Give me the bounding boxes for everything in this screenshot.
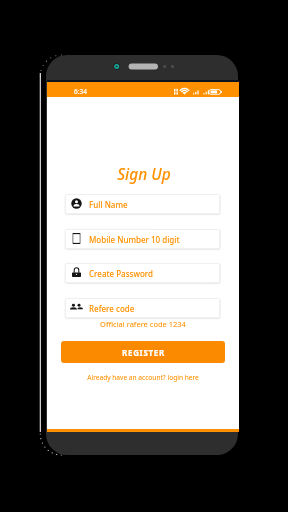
- staticText: Mobile Number 10 digit: [89, 234, 180, 245]
- button[interactable]: Mobile Number 10 digit: [65, 229, 220, 249]
- staticText: Create Password: [89, 268, 153, 279]
- button[interactable]: REGISTER: [61, 341, 225, 363]
- button[interactable]: Full Name: [65, 194, 220, 214]
- staticText: Sign Up: [48, 164, 240, 185]
- staticText: Official rafere code 1234: [47, 319, 239, 329]
- staticText: 6:34: [74, 87, 87, 96]
- button[interactable]: Already have an account? login here: [47, 373, 239, 382]
- button[interactable]: Create Password: [65, 263, 220, 283]
- staticText: Full Name: [89, 199, 128, 210]
- staticText: REGISTER: [122, 347, 165, 358]
- staticText: Already have an account? login here: [87, 373, 199, 382]
- staticText: Refere code: [89, 303, 135, 314]
- button[interactable]: Refere code: [65, 298, 220, 318]
